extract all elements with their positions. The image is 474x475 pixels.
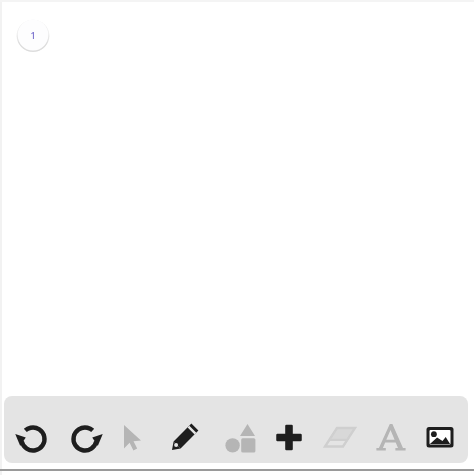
button[interactable]: Shapes xyxy=(219,415,263,459)
button[interactable]: Insert image xyxy=(418,415,462,459)
button[interactable]: Eraser xyxy=(318,415,362,459)
button[interactable]: Undo xyxy=(11,415,55,459)
button[interactable]: Pen xyxy=(163,415,207,459)
button[interactable]: Redo xyxy=(63,415,107,459)
button[interactable]: Select xyxy=(110,415,154,459)
button[interactable]: Text xyxy=(368,415,412,459)
button[interactable]: 1 xyxy=(16,18,50,52)
staticText: 1 xyxy=(30,29,36,41)
button[interactable]: Add xyxy=(267,415,311,459)
